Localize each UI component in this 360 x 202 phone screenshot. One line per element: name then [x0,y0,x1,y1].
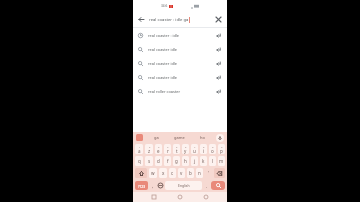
staticText: m [219,158,224,164]
staticText: 3 [158,145,160,148]
button[interactable]: ?123 [135,181,148,190]
staticText: real roller coaster idle game [148,89,181,94]
button[interactable]: Insert suggestion [215,74,222,81]
staticText: real coaster idle game offline [148,61,181,66]
staticText: v [180,170,183,176]
button[interactable]: k [200,156,207,166]
staticText: p [220,148,223,154]
staticText: t [176,148,178,154]
button[interactable]: Home [175,192,185,202]
button[interactable]: Emoji [156,180,164,191]
staticText: , [152,183,154,189]
staticText: s [148,158,151,164]
staticText: 9 [212,145,214,148]
staticText: . [206,183,208,189]
button[interactable]: n [196,168,203,178]
button[interactable]: j [191,156,198,166]
staticText: u [193,148,196,154]
button[interactable]: 1 [135,144,143,154]
button[interactable]: English [165,181,202,190]
staticText: real coaster : idle ga [149,17,189,23]
button[interactable]: d [155,156,162,166]
button[interactable]: ga [154,135,159,140]
staticText: k [202,158,205,164]
button[interactable]: ho [200,135,205,140]
button[interactable]: l [209,156,216,166]
button[interactable]: b [187,168,194,178]
staticText: 5 [176,145,178,148]
button[interactable]: h [182,156,189,166]
button[interactable]: Comma [149,180,156,191]
staticText: y [184,148,187,154]
staticText: q [138,158,141,164]
button[interactable]: 2 [145,144,153,154]
button[interactable]: 0 [218,144,225,154]
button[interactable]: Back [133,12,227,27]
staticText: h [184,158,187,164]
staticText: real coaster idle game [148,47,181,52]
staticText: n [198,170,201,176]
staticText: x [162,170,165,176]
staticText: ?123 [138,184,146,188]
button[interactable]: c [169,168,176,178]
button[interactable]: Back [137,15,146,24]
staticText: 7 [194,145,196,148]
button[interactable]: s [145,156,153,166]
staticText: d [157,158,160,164]
staticText: 4 [167,145,169,148]
button[interactable]: 3 [155,144,162,154]
button[interactable]: 8 [200,144,207,154]
staticText: i [203,148,205,154]
button[interactable]: 7 [191,144,198,154]
button[interactable]: 9 [209,144,216,154]
staticText: 8 [203,145,205,148]
staticText: l [212,158,214,164]
button[interactable]: 5 [173,144,180,154]
staticText: w [151,170,155,176]
button[interactable]: Shift [135,168,147,178]
button[interactable]: Search [211,181,225,190]
button[interactable]: x [159,168,167,178]
button[interactable]: Insert suggestion [215,46,222,53]
button[interactable]: Insert suggestion [215,32,222,39]
button[interactable]: v [178,168,185,178]
button[interactable]: 4 [164,144,171,154]
staticText: z [148,148,151,154]
button[interactable]: Backspace [214,168,225,178]
button[interactable]: Google [136,134,143,141]
staticText: r [167,148,169,154]
button[interactable]: real coaster idle game offline [133,56,227,70]
button[interactable]: ' [205,168,212,178]
staticText: real coaster : idle game [148,33,181,38]
button[interactable]: real coaster idle game [133,42,227,56]
staticText: 6 [185,145,187,148]
button[interactable]: Insert suggestion [215,88,222,95]
button[interactable]: game [174,135,185,140]
staticText: j [194,158,196,164]
button[interactable]: Back [201,192,211,202]
staticText: g [175,158,178,164]
staticText: 1 [139,145,141,148]
button[interactable]: Voice input [216,134,224,142]
button[interactable]: f [164,156,171,166]
button[interactable]: Insert suggestion [215,60,222,67]
button[interactable]: g [173,156,180,166]
button[interactable]: Clear [214,15,223,24]
button[interactable]: real roller coaster idle game [133,84,227,98]
staticText: ' [208,170,210,176]
button[interactable]: Recents [149,192,159,202]
button[interactable]: 6 [182,144,189,154]
staticText: English [178,183,190,188]
button[interactable]: w [149,168,157,178]
button[interactable]: real coaster : idle game [133,28,227,42]
button[interactable]: real coaster idle game 3 [133,70,227,84]
button[interactable]: Period [203,180,210,191]
staticText: e [157,148,160,154]
staticText: 0 [221,145,223,148]
staticText: c [171,170,174,176]
staticText: a [138,148,141,154]
button[interactable]: q [135,156,143,166]
button[interactable]: m [218,156,225,166]
staticText: 2 [149,145,151,148]
staticText: 34:6 [161,4,168,8]
